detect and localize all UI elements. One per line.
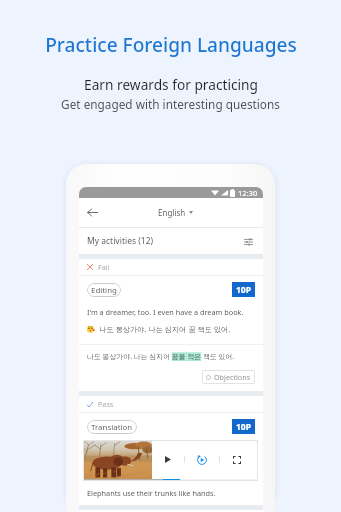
staticText: Pass bbox=[98, 399, 114, 409]
button[interactable]: Replay bbox=[195, 453, 208, 466]
staticText: 나도 몽상가야. 나는 심지어 꿈을 적은 책도 있어. bbox=[87, 352, 235, 361]
staticText: Elephants use their trunks like hands. bbox=[87, 488, 216, 498]
button[interactable]: Play bbox=[161, 453, 174, 466]
button[interactable]: Filter bbox=[242, 235, 255, 248]
button[interactable]: Back bbox=[79, 198, 105, 227]
button[interactable]: Fullscreen bbox=[230, 453, 243, 466]
staticText: Get engaged with interesting questions bbox=[61, 96, 280, 112]
staticText: Objections bbox=[214, 372, 251, 382]
staticText: 10P bbox=[236, 421, 252, 433]
staticText: Translation bbox=[91, 422, 133, 433]
staticText: English bbox=[158, 207, 186, 218]
staticText: Fail bbox=[98, 262, 110, 272]
staticText: I'm a dreamer, too. I even have a dream … bbox=[87, 307, 244, 317]
button[interactable]: Translation bbox=[87, 420, 137, 434]
staticText: 12:30 bbox=[238, 188, 258, 198]
staticText: Practice Foreign Languages bbox=[45, 32, 297, 58]
staticText: My activities (12) bbox=[87, 235, 154, 247]
staticText: 나도 몽상가야. 나는 심지어 꿈 책도 있어. bbox=[99, 324, 231, 334]
button[interactable]: English bbox=[158, 207, 193, 218]
staticText: Earn rewards for practicing bbox=[84, 75, 258, 94]
staticText: Editing bbox=[91, 285, 117, 296]
button[interactable]: Objections bbox=[202, 370, 255, 384]
button[interactable]: Editing bbox=[87, 283, 121, 297]
staticText: 10P bbox=[236, 284, 252, 296]
